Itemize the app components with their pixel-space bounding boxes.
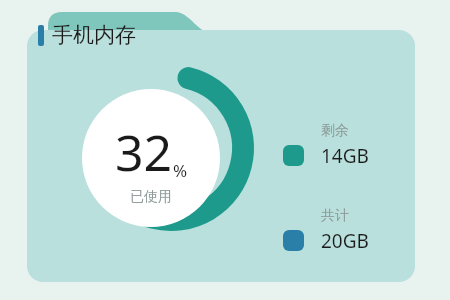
staticText: 20GB — [321, 228, 369, 254]
staticText: % — [173, 159, 188, 182]
button[interactable]: Free storage — [283, 122, 369, 169]
staticText: 手机内存 — [52, 22, 136, 48]
staticText: 32 — [115, 118, 173, 186]
button[interactable]: 32 — [82, 118, 220, 210]
staticText: 剩余 — [321, 122, 349, 140]
staticText: 共计 — [321, 207, 349, 225]
button[interactable]: Total storage — [283, 207, 369, 254]
button[interactable] — [27, 30, 415, 282]
button[interactable]: 手机内存 — [38, 22, 136, 48]
staticText: 已使用 — [130, 188, 172, 206]
staticText: 14GB — [321, 143, 369, 169]
